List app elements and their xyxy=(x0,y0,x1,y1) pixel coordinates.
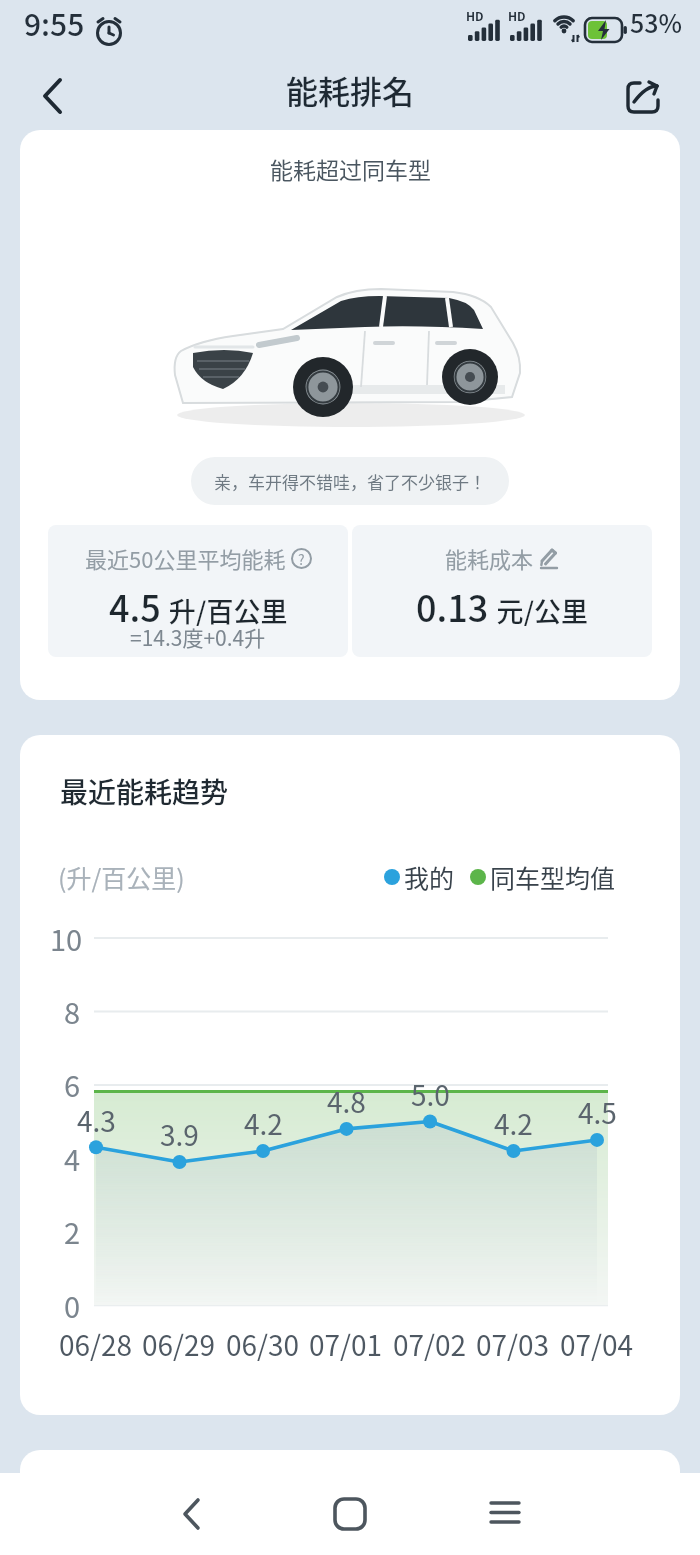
button[interactable] xyxy=(160,1481,226,1547)
staticText: 53% xyxy=(630,4,682,40)
staticText: HD xyxy=(508,7,526,24)
button[interactable] xyxy=(317,1481,383,1547)
staticText: =14.3度+0.4升 xyxy=(130,622,266,652)
staticText: 最近50公里平均能耗 xyxy=(85,542,291,574)
staticText: 10 xyxy=(50,917,83,959)
staticText: 2 xyxy=(64,1210,81,1252)
staticText: 07/04 xyxy=(560,1324,634,1365)
staticText: 能耗超过同车型 xyxy=(270,152,431,185)
staticText: 07/02 xyxy=(393,1324,467,1365)
staticText: 8 xyxy=(64,990,81,1032)
staticText: 4.5 升/百公里 xyxy=(109,580,288,626)
staticText: 4 xyxy=(64,1137,81,1179)
staticText: 3.9 xyxy=(160,1114,199,1155)
button[interactable]: 能耗成本 xyxy=(352,525,652,657)
button[interactable] xyxy=(616,68,672,124)
button[interactable] xyxy=(472,1481,538,1547)
staticText: 06/29 xyxy=(142,1324,216,1365)
staticText: 9:55 xyxy=(24,1,85,44)
staticText: HD xyxy=(466,7,484,24)
staticText: 4.5 xyxy=(578,1092,617,1133)
staticText: 4.8 xyxy=(327,1081,366,1122)
staticText: 06/28 xyxy=(59,1324,133,1365)
staticText: 07/01 xyxy=(309,1324,383,1365)
staticText: 0.13 元/公里 xyxy=(416,580,588,626)
staticText: 4.3 xyxy=(77,1100,116,1141)
staticText: 能耗排名 xyxy=(286,67,415,113)
staticText: 4.2 xyxy=(494,1103,533,1144)
staticText: 能耗成本 xyxy=(445,542,538,574)
staticText: ? xyxy=(298,549,305,569)
staticText: 最近能耗趋势 xyxy=(60,771,229,812)
staticText: 4.2 xyxy=(244,1103,283,1144)
staticText: 亲，车开得不错哇，省了不少银子！ xyxy=(214,469,486,494)
staticText: 我的 xyxy=(404,859,455,895)
staticText: 0 xyxy=(64,1284,81,1326)
staticText: (升/百公里) xyxy=(58,859,185,895)
button[interactable]: 最近50公里平均能耗 xyxy=(48,525,348,657)
button[interactable] xyxy=(26,68,82,124)
staticText: 同车型均值 xyxy=(490,859,616,895)
staticText: 06/30 xyxy=(226,1324,300,1365)
staticText: 07/03 xyxy=(476,1324,550,1365)
staticText: 5.0 xyxy=(411,1074,450,1115)
staticText: 6 xyxy=(64,1063,81,1105)
